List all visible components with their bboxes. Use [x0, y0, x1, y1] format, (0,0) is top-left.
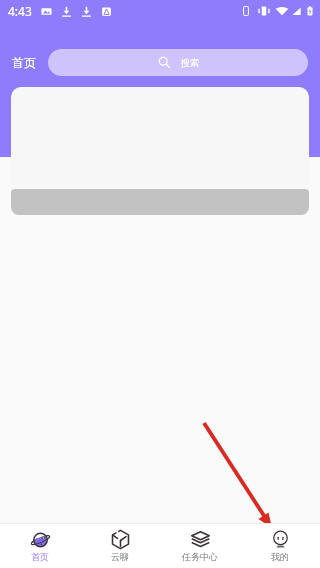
other: Battery charging	[305, 6, 315, 16]
staticText: 任务中心	[182, 551, 218, 562]
button[interactable]	[11, 87, 309, 189]
staticText: 搜索	[181, 57, 199, 68]
button[interactable]	[11, 189, 309, 215]
staticText: 4:43	[8, 3, 32, 19]
button[interactable]: 云聊	[80, 524, 160, 568]
other: SIM card	[241, 6, 251, 16]
staticText: 首页	[12, 55, 36, 70]
button[interactable]: 任务中心	[160, 524, 240, 568]
other: Mobile signal	[291, 6, 302, 17]
staticText: 我的	[271, 551, 289, 562]
other: Wi-Fi	[275, 4, 289, 18]
button[interactable]: 我的	[240, 524, 320, 568]
other: Screenshot	[41, 6, 52, 17]
other: Download	[61, 6, 72, 17]
staticText: 首页	[31, 551, 49, 562]
button[interactable]: 首页	[9, 51, 39, 74]
other: App notification	[101, 6, 112, 17]
other: Vibrate	[257, 4, 271, 18]
other: Download	[81, 6, 92, 17]
button[interactable]: 搜索	[48, 49, 308, 76]
button[interactable]: 首页	[0, 524, 80, 568]
staticText: 云聊	[111, 551, 129, 562]
